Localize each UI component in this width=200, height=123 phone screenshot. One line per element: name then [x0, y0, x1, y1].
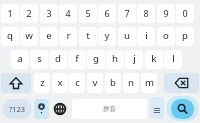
staticText: d — [55, 52, 61, 65]
button[interactable]: Change language — [50, 99, 70, 119]
staticText: 2 — [26, 7, 32, 19]
button[interactable]: v — [87, 73, 103, 93]
staticText: o — [163, 29, 169, 42]
staticText: b — [110, 76, 116, 89]
button[interactable]: Search — [167, 96, 198, 121]
staticText: g — [93, 52, 99, 65]
staticText: a — [17, 52, 23, 65]
button[interactable]: z — [34, 73, 50, 93]
button[interactable]: k — [145, 50, 163, 69]
staticText: 拼音 — [103, 105, 116, 113]
button[interactable]: b — [105, 73, 121, 93]
button[interactable]: 拼音 — [72, 99, 147, 119]
staticText: e — [46, 29, 52, 42]
staticText: z — [40, 76, 45, 89]
staticText: s — [37, 52, 42, 65]
button[interactable]: f — [68, 50, 86, 69]
button[interactable]: 0 — [176, 4, 194, 23]
button[interactable]: 5 — [79, 4, 97, 23]
staticText: m — [145, 76, 154, 89]
staticText: u — [124, 29, 130, 42]
button[interactable]: 6 — [98, 4, 116, 23]
button[interactable]: l — [164, 50, 182, 69]
button[interactable]: e — [40, 27, 58, 46]
button[interactable]: r — [59, 27, 77, 46]
button[interactable]: 9 — [157, 4, 175, 23]
staticText: y — [104, 29, 110, 42]
staticText: 6 — [104, 7, 110, 19]
button[interactable]: Emoji — [34, 99, 49, 119]
staticText: n — [128, 76, 134, 89]
staticText: 4 — [65, 7, 71, 19]
staticText: c — [75, 76, 80, 89]
button[interactable]: a — [11, 50, 29, 69]
staticText: k — [151, 52, 157, 65]
staticText: 0 — [182, 7, 188, 19]
staticText: 8 — [143, 7, 149, 19]
button[interactable]: c — [69, 73, 85, 93]
staticText: w — [25, 29, 33, 42]
button[interactable]: 1 — [1, 4, 19, 23]
staticText: t — [86, 29, 90, 42]
button[interactable]: d — [49, 50, 67, 69]
button[interactable]: u — [118, 27, 136, 46]
staticText: i — [145, 29, 148, 42]
staticText: 9 — [163, 7, 169, 19]
staticText: l — [172, 52, 175, 65]
staticText: q — [7, 29, 13, 42]
button[interactable]: o — [157, 27, 175, 46]
staticText: 3 — [46, 7, 52, 19]
button[interactable]: 2 — [20, 4, 38, 23]
button[interactable]: ?123 — [2, 99, 32, 119]
staticText: f — [75, 52, 79, 65]
button[interactable]: p — [176, 27, 194, 46]
button[interactable]: m — [141, 73, 157, 93]
button[interactable]: q — [1, 27, 19, 46]
staticText: x — [57, 76, 63, 89]
button[interactable]: 3 — [40, 4, 58, 23]
staticText: h — [112, 52, 118, 65]
staticText: 1 — [7, 7, 13, 19]
button[interactable]: g — [87, 50, 105, 69]
button[interactable]: 8 — [137, 4, 155, 23]
button[interactable]: s — [30, 50, 48, 69]
staticText: j — [133, 52, 136, 65]
button[interactable]: t — [79, 27, 97, 46]
button[interactable]: 4 — [59, 4, 77, 23]
staticText: ?123 — [9, 104, 26, 114]
button[interactable]: h — [106, 50, 124, 69]
button[interactable]: Punctuation — [150, 97, 164, 119]
staticText: 5 — [85, 7, 91, 19]
staticText: v — [92, 76, 98, 89]
button[interactable]: i — [137, 27, 155, 46]
button[interactable]: x — [52, 73, 68, 93]
button[interactable]: Backspace — [164, 73, 199, 93]
staticText: 7 — [124, 7, 130, 19]
staticText: r — [66, 29, 71, 42]
button[interactable]: j — [125, 50, 143, 69]
button[interactable]: w — [20, 27, 38, 46]
button[interactable]: y — [98, 27, 116, 46]
button[interactable]: 7 — [118, 4, 136, 23]
staticText: p — [182, 29, 188, 42]
button[interactable]: n — [123, 73, 139, 93]
button[interactable]: Shift — [1, 73, 31, 93]
